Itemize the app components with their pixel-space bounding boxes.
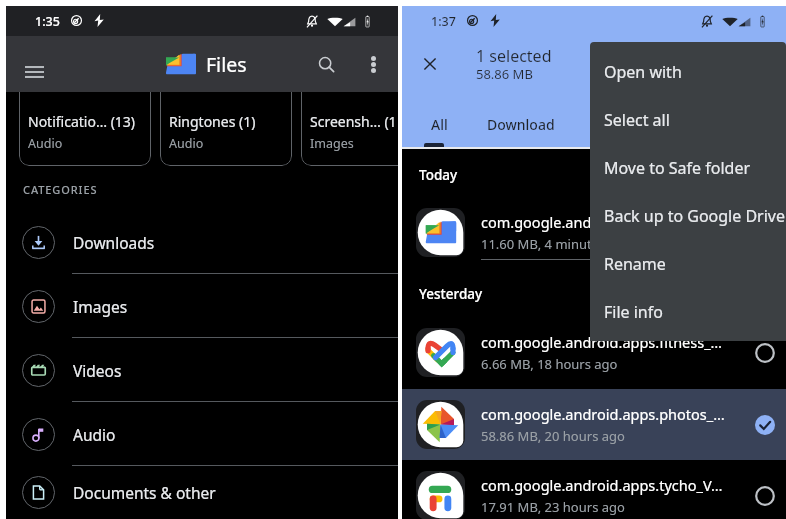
button[interactable]: Select: [750, 218, 780, 248]
staticText: 1:37: [431, 13, 456, 30]
button[interactable]: Audio: [6, 402, 398, 466]
staticText: 1 selected: [476, 45, 552, 67]
button[interactable]: Screensh… (1: [301, 92, 398, 166]
button[interactable]: Search: [304, 42, 348, 86]
button[interactable]: Select: [750, 410, 780, 440]
staticText: Documents & other: [73, 482, 216, 503]
button[interactable]: com.google.android…: [402, 197, 786, 268]
button[interactable]: More options: [351, 42, 395, 86]
staticText: 58.86 MB: [476, 65, 533, 83]
button[interactable]: Menu: [12, 50, 56, 94]
staticText: 11.60 MB, 4 minutes ago: [481, 235, 632, 253]
staticText: Notificatio… (13): [28, 112, 136, 131]
staticText: Back up to Google Drive: [604, 205, 785, 227]
button[interactable]: Notificatio… (13): [19, 92, 151, 166]
staticText: All: [431, 115, 448, 134]
button[interactable]: Rename: [590, 240, 786, 288]
button[interactable]: Documents & other: [6, 466, 398, 519]
button[interactable]: Open with: [590, 48, 786, 96]
staticText: Open with: [604, 61, 682, 83]
staticText: com.google.android.apps.tycho_V…: [481, 475, 723, 495]
staticText: Audio: [28, 135, 63, 152]
staticText: Videos: [73, 360, 122, 381]
button[interactable]: com.google.android.apps.photos_…: [402, 389, 786, 460]
staticText: Rename: [604, 253, 666, 275]
staticText: 17.91 MB, 23 hours ago: [481, 498, 625, 516]
button[interactable]: com.google.android.apps.fitness_…: [402, 317, 786, 388]
staticText: File info: [604, 301, 663, 323]
staticText: com.google.android.apps.fitness_…: [481, 332, 723, 352]
button[interactable]: Select: [750, 338, 780, 368]
staticText: Audio: [73, 424, 116, 445]
staticText: Audio: [169, 135, 204, 152]
button[interactable]: com.google.android.apps.tycho_V…: [402, 460, 786, 519]
staticText: Today: [419, 166, 458, 184]
staticText: Screensh… (1: [310, 112, 397, 131]
button[interactable]: Download: [474, 104, 567, 145]
button[interactable]: Images: [6, 274, 398, 338]
staticText: com.google.android…: [481, 212, 630, 232]
button[interactable]: Close: [413, 47, 447, 81]
staticText: Images: [310, 135, 354, 152]
staticText: 1:35: [35, 13, 60, 30]
button[interactable]: Ringtones (1): [160, 92, 292, 166]
button[interactable]: File info: [590, 288, 786, 336]
button[interactable]: Select: [750, 481, 780, 511]
staticText: Download: [487, 115, 555, 134]
staticText: 58.86 MB, 20 hours ago: [481, 427, 625, 445]
staticText: CATEGORIES: [23, 182, 98, 197]
staticText: Ringtones (1): [169, 112, 256, 131]
button[interactable]: Move to Safe folder: [590, 144, 786, 192]
button[interactable]: Select all: [590, 96, 786, 144]
staticText: com.google.android.apps.photos_…: [481, 404, 725, 424]
staticText: Images: [73, 296, 128, 317]
staticText: Files: [206, 51, 247, 78]
staticText: Downloads: [73, 232, 155, 253]
button[interactable]: Downloads: [6, 210, 398, 274]
button[interactable]: All: [415, 104, 463, 145]
staticText: Move to Safe folder: [604, 157, 751, 179]
button[interactable]: Back up to Google Drive: [590, 192, 786, 240]
button[interactable]: Videos: [6, 338, 398, 402]
staticText: 6.66 MB, 18 hours ago: [481, 355, 618, 373]
staticText: Select all: [604, 109, 670, 131]
staticText: Yesterday: [419, 285, 483, 303]
